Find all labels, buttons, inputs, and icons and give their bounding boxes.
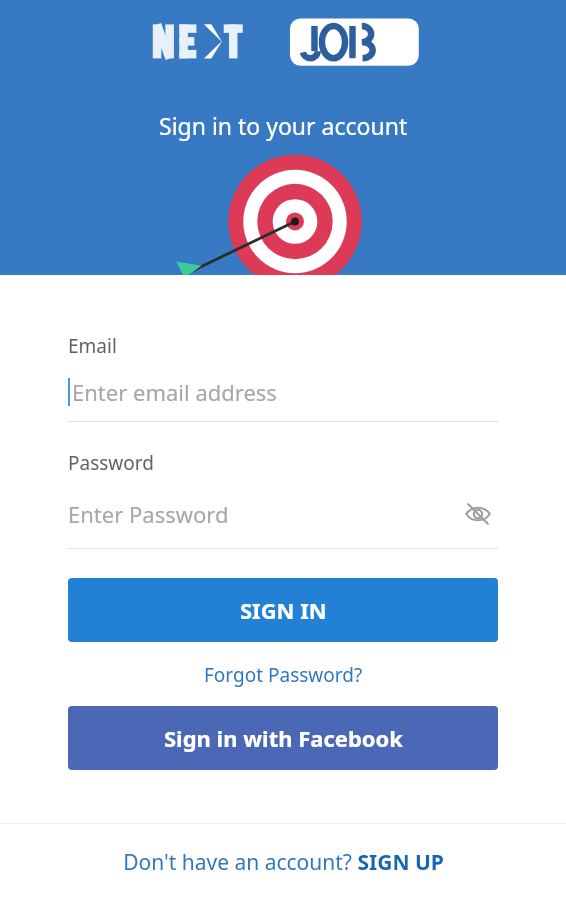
- staticText: Don't have an account? SIGN UP: [123, 848, 444, 877]
- button[interactable]: Password: [68, 450, 498, 549]
- button[interactable]: Forgot Password?: [190, 658, 377, 692]
- staticText: Enter Password: [68, 499, 229, 529]
- button[interactable]: Sign in with Facebook: [68, 706, 498, 770]
- staticText: Sign in to your account: [159, 110, 408, 141]
- button[interactable]: Show password: [458, 494, 498, 534]
- staticText: Password: [68, 450, 154, 476]
- button[interactable]: Email: [68, 333, 498, 422]
- staticText: SIGN IN: [240, 595, 327, 625]
- button[interactable]: SIGN IN: [68, 578, 498, 642]
- staticText: Sign in with Facebook: [164, 723, 403, 753]
- staticText: Enter email address: [72, 377, 277, 407]
- staticText: Email: [68, 333, 117, 359]
- button[interactable]: Don't have an account? SIGN UP: [0, 824, 566, 900]
- staticText: Forgot Password?: [204, 662, 363, 688]
